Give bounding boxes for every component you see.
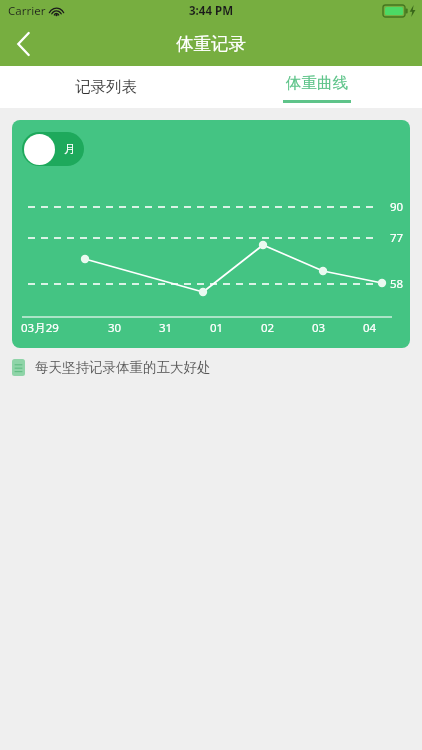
staticText: 每天坚持记录体重的五大好处 (35, 359, 211, 376)
staticText: 58 (390, 276, 404, 292)
button[interactable]: 记录列表 (0, 66, 211, 108)
staticText: Carrier (8, 3, 46, 19)
staticText: 3:44 PM (189, 3, 233, 19)
staticText: 记录列表 (75, 77, 137, 97)
staticText: 30 (108, 320, 122, 336)
staticText: 月 (64, 142, 76, 156)
staticText: 01 (210, 320, 224, 336)
staticText: 03月29 (21, 320, 59, 336)
button[interactable]: 月 (22, 132, 84, 166)
staticText: 体重曲线 (286, 73, 348, 93)
staticText: 03 (312, 320, 326, 336)
staticText: 02 (261, 320, 275, 336)
staticText: 31 (159, 320, 173, 336)
button[interactable]: Back (0, 22, 46, 66)
staticText: 90 (390, 199, 404, 215)
button[interactable]: 每天坚持记录体重的五大好处 (12, 359, 410, 376)
staticText: 77 (390, 230, 404, 246)
staticText: 体重记录 (176, 33, 246, 55)
button[interactable]: 体重曲线 (211, 66, 422, 108)
staticText: 04 (363, 320, 377, 336)
